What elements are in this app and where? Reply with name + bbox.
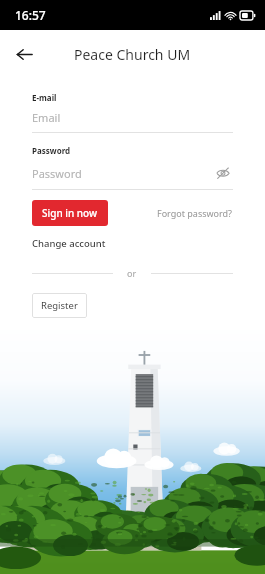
staticText: or bbox=[127, 267, 137, 279]
button[interactable]: Sign in now bbox=[32, 200, 108, 226]
staticText: Email bbox=[32, 110, 61, 125]
button[interactable]: Back bbox=[8, 38, 40, 70]
button[interactable]: Show password bbox=[213, 163, 233, 183]
staticText: Register bbox=[41, 299, 78, 312]
button[interactable]: Change account bbox=[32, 235, 106, 252]
staticText: Password bbox=[32, 166, 82, 181]
staticText: Change account bbox=[32, 237, 106, 250]
staticText: Peace Church UM bbox=[74, 45, 191, 64]
staticText: Sign in now bbox=[42, 206, 98, 220]
staticText: Forgot password? bbox=[157, 207, 233, 219]
staticText: 16:57 bbox=[15, 7, 46, 23]
staticText: Password bbox=[32, 145, 71, 156]
button[interactable]: Email bbox=[32, 110, 233, 125]
button[interactable]: Password bbox=[32, 166, 213, 181]
button[interactable]: Forgot password? bbox=[157, 203, 233, 223]
staticText: E-mail bbox=[32, 92, 57, 103]
button[interactable]: Register bbox=[32, 293, 87, 318]
